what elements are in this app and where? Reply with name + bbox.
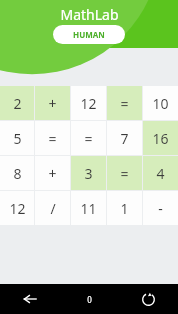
- staticText: -: [158, 199, 163, 218]
- button[interactable]: Restart: [119, 284, 178, 314]
- button[interactable]: =: [107, 156, 142, 190]
- staticText: =: [84, 129, 93, 148]
- button[interactable]: =: [107, 86, 142, 120]
- button[interactable]: =: [71, 121, 106, 155]
- button[interactable]: 10: [143, 86, 178, 120]
- button[interactable]: 8: [0, 156, 34, 190]
- button[interactable]: 12: [0, 191, 34, 225]
- button[interactable]: 3: [71, 156, 106, 190]
- button[interactable]: 12: [71, 86, 106, 120]
- button[interactable]: /: [35, 191, 70, 225]
- button[interactable]: 16: [143, 121, 178, 155]
- staticText: 12: [80, 94, 97, 113]
- button[interactable]: 4: [143, 156, 178, 190]
- staticText: 11: [80, 199, 97, 218]
- staticText: /: [50, 199, 56, 218]
- staticText: 5: [13, 129, 22, 148]
- button[interactable]: HUMAN: [53, 25, 125, 44]
- staticText: +: [48, 164, 57, 183]
- staticText: 10: [152, 94, 169, 113]
- button[interactable]: +: [35, 86, 70, 120]
- staticText: +: [48, 94, 57, 113]
- button[interactable]: 2: [0, 86, 34, 120]
- staticText: HUMAN: [73, 29, 105, 40]
- staticText: 0: [87, 294, 92, 305]
- staticText: 7: [120, 129, 129, 148]
- button[interactable]: =: [35, 121, 70, 155]
- staticText: =: [120, 94, 129, 113]
- staticText: =: [120, 164, 129, 183]
- button[interactable]: +: [35, 156, 70, 190]
- staticText: MathLab: [60, 5, 119, 24]
- button[interactable]: 5: [0, 121, 34, 155]
- button[interactable]: Back: [0, 284, 60, 314]
- button[interactable]: 7: [107, 121, 142, 155]
- staticText: 12: [9, 199, 26, 218]
- staticText: =: [48, 129, 57, 148]
- staticText: 1: [120, 199, 129, 218]
- button[interactable]: 1: [107, 191, 142, 225]
- button[interactable]: 11: [71, 191, 106, 225]
- staticText: 2: [13, 94, 22, 113]
- button[interactable]: -: [143, 191, 178, 225]
- staticText: 16: [152, 129, 169, 148]
- staticText: 4: [156, 164, 165, 183]
- staticText: 8: [13, 164, 22, 183]
- staticText: 3: [84, 164, 93, 183]
